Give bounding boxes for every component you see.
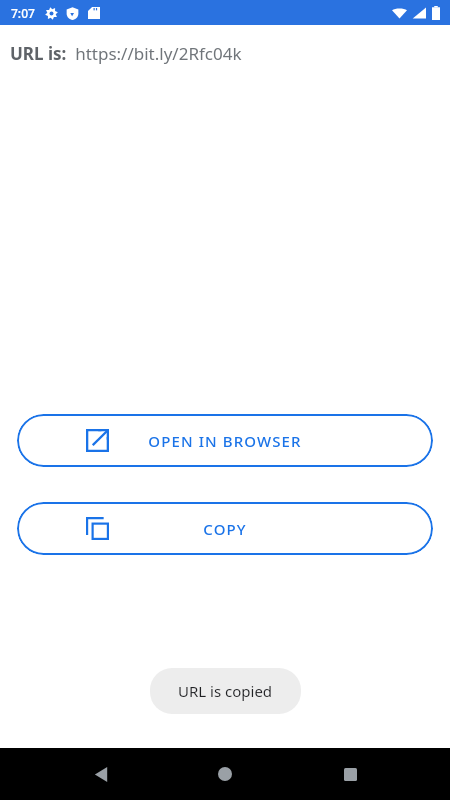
staticText: URL is copied (178, 681, 273, 701)
staticText: COPY (17, 519, 433, 539)
button[interactable]: Back (77, 750, 125, 798)
staticText: OPEN IN BROWSER (17, 431, 433, 451)
staticText: URL is: https://bit.ly/2Rfc04k (10, 42, 242, 65)
button[interactable]: COPY (17, 502, 433, 555)
staticText: 7:07 (11, 5, 35, 21)
button[interactable]: Home (201, 750, 249, 798)
button[interactable]: OPEN IN BROWSER (17, 414, 433, 467)
button[interactable]: Recents (326, 750, 374, 798)
